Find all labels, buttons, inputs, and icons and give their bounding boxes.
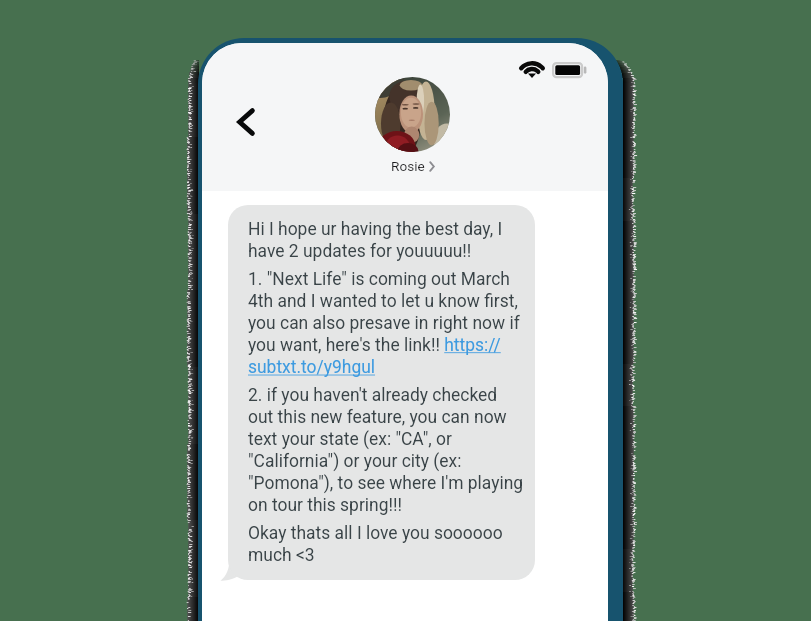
- button[interactable]: Back: [228, 104, 264, 140]
- other: Battery full: [552, 61, 587, 79]
- button[interactable]: Hi I hope ur having the best day, I have…: [228, 205, 535, 580]
- staticText: Hi I hope ur having the best day, I have…: [248, 219, 526, 262]
- staticText: 1. "Next Life" is coming out March 4th a…: [248, 269, 526, 378]
- staticText: Rosie: [391, 158, 425, 174]
- button[interactable]: Rosie: [391, 158, 435, 174]
- button[interactable]: Rosie profile photo: [375, 77, 450, 152]
- staticText: Okay thats all I love you soooooo much <…: [248, 523, 526, 566]
- other: Wi-Fi: [521, 61, 543, 78]
- staticText: 2. if you haven't already checked out th…: [248, 385, 526, 516]
